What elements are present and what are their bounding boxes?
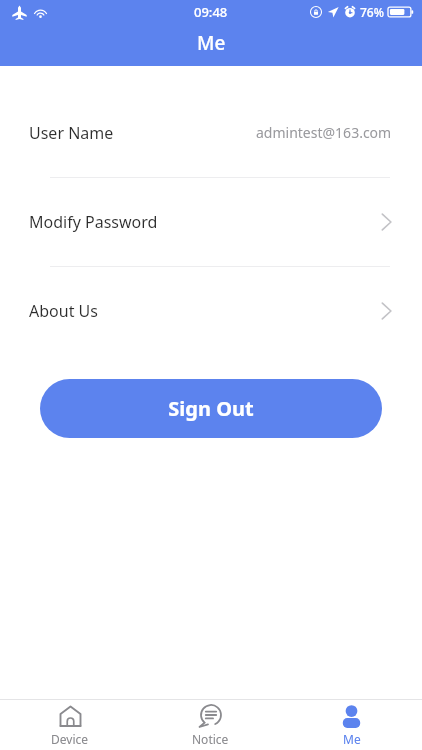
button[interactable]: About Us [0, 288, 422, 333]
staticText: Me [343, 731, 361, 747]
other: Notice [198, 704, 223, 729]
button[interactable]: Me [281, 700, 422, 750]
staticText: Notice [192, 731, 229, 747]
other: Device [58, 704, 83, 729]
button[interactable]: Modify Password [0, 199, 422, 244]
staticText: admintest@163.com [256, 123, 392, 142]
staticText: 09:48 [194, 3, 228, 21]
button[interactable]: User Name [0, 110, 422, 155]
staticText: User Name [29, 122, 114, 144]
staticText: Sign Out [168, 395, 254, 422]
other: Me [339, 704, 364, 729]
staticText: About Us [29, 300, 98, 322]
button[interactable]: Notice [140, 700, 281, 750]
button[interactable]: Sign Out [40, 379, 382, 438]
button[interactable]: Device [0, 700, 140, 750]
staticText: Device [51, 731, 89, 747]
staticText: 76% [360, 4, 384, 20]
staticText: Me [197, 30, 226, 56]
staticText: Modify Password [29, 211, 158, 233]
